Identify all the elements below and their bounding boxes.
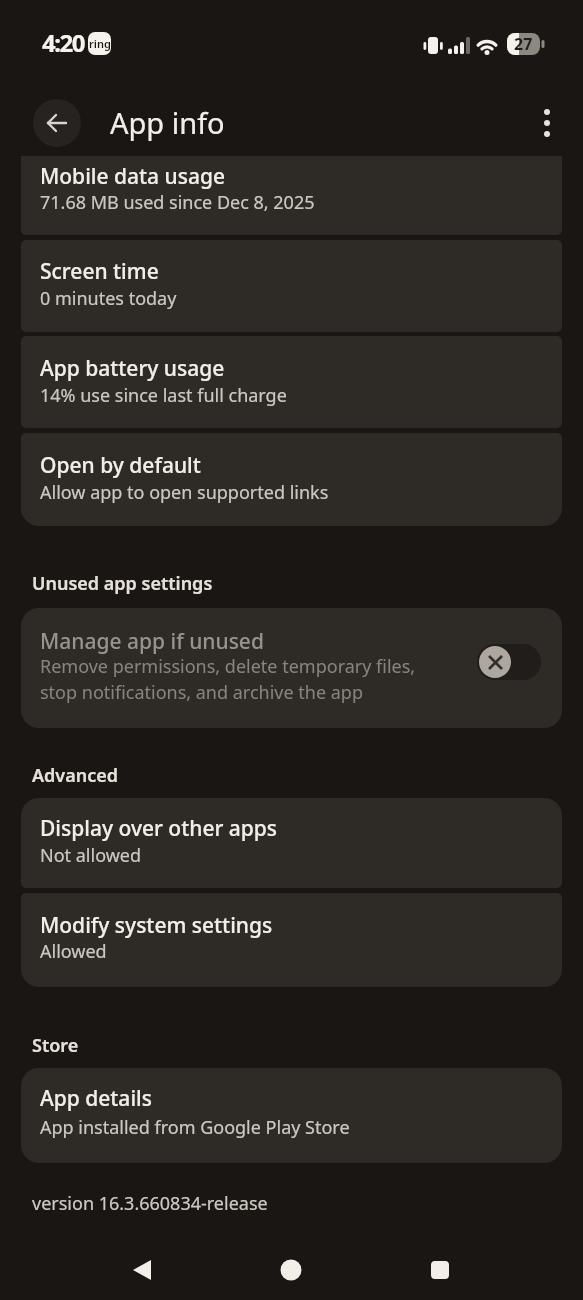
button[interactable]: App details [21,1068,562,1163]
staticText: App info [110,103,225,142]
staticText: Mobile data usage [40,162,225,191]
staticText: Allowed [40,939,107,964]
staticText: Unused app settings [32,571,213,594]
staticText: Advanced [32,763,119,786]
button[interactable]: Screen time [21,240,562,332]
staticText: Open by default [40,451,201,480]
button[interactable]: Mobile data usage [21,156,562,235]
staticText: Store [32,1033,79,1056]
staticText: 14% use since last full charge [40,383,287,408]
staticText: 27 [514,33,533,55]
button[interactable] [477,644,541,680]
staticText: Screen time [40,257,159,286]
button[interactable] [33,99,81,147]
staticText: 0 minutes today [40,286,177,311]
staticText: App battery usage [40,354,225,383]
button[interactable] [269,1248,313,1292]
staticText: App installed from Google Play Store [40,1115,350,1140]
staticText: Display over other apps [40,814,278,843]
staticText: 4:20 [42,26,84,59]
staticText: version 16.3.660834-release [32,1191,268,1216]
staticText: Manage app if unused [40,627,264,656]
button[interactable] [539,107,555,139]
staticText: Not allowed [40,843,142,868]
staticText: Remove permissions, delete temporary fil… [40,654,416,705]
button[interactable] [418,1248,462,1292]
staticText: 71.68 MB used since Dec 8, 2025 [40,190,315,215]
button[interactable]: App battery usage [21,336,562,428]
staticText: ring [89,36,111,51]
button[interactable] [120,1248,164,1292]
button[interactable]: Modify system settings [21,893,562,987]
button[interactable]: Display over other apps [21,798,562,888]
staticText: App details [40,1084,152,1113]
staticText: Modify system settings [40,911,273,940]
button[interactable]: Open by default [21,433,562,526]
staticText: Allow app to open supported links [40,480,329,505]
button[interactable]: Manage app if unused [21,608,562,728]
